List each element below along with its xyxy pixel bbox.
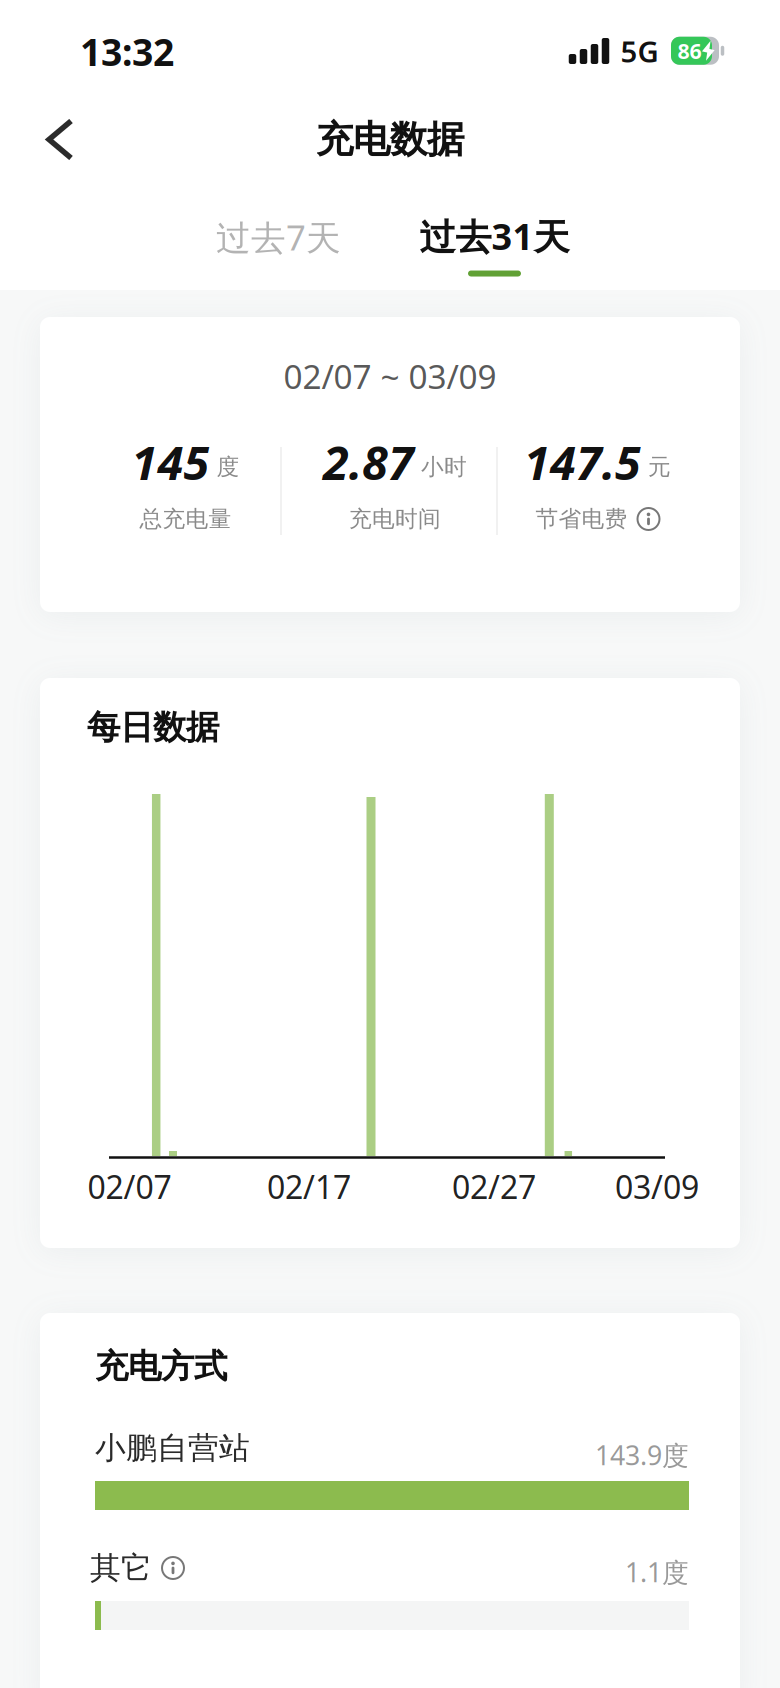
staticText: 充电时间 xyxy=(349,505,441,533)
button[interactable]: Info xyxy=(162,1557,184,1579)
staticText: 03/09 xyxy=(615,1165,699,1208)
staticText: 每日数据 xyxy=(87,707,219,748)
staticText: 02/27 xyxy=(452,1165,536,1208)
staticText: 1.1度 xyxy=(625,1554,689,1590)
staticText: 度 xyxy=(216,453,239,481)
button[interactable]: Back xyxy=(33,106,87,173)
staticText: 147.5 xyxy=(524,431,641,493)
staticText: 02/07 ~ 03/09 xyxy=(283,354,496,398)
staticText: 02/17 xyxy=(267,1165,351,1208)
button[interactable]: Info xyxy=(637,508,659,530)
staticText: 充电方式 xyxy=(95,1346,227,1387)
staticText: 小鹏自营站 xyxy=(95,1429,250,1467)
staticText: 节省电费 xyxy=(535,505,627,533)
staticText: 其它 xyxy=(90,1549,152,1587)
button[interactable]: 过去7天 xyxy=(208,206,349,268)
staticText: 5G xyxy=(620,31,658,70)
staticText: 86 xyxy=(677,37,701,65)
staticText: 02/07 xyxy=(87,1165,171,1208)
staticText: 元 xyxy=(648,453,671,481)
staticText: 过去31天 xyxy=(419,212,569,260)
button[interactable]: 过去31天 xyxy=(411,204,577,268)
staticText: 小时 xyxy=(421,453,467,481)
staticText: 143.9度 xyxy=(595,1437,689,1473)
staticText: 充电数据 xyxy=(316,117,464,162)
staticText: 145 xyxy=(131,431,209,493)
staticText: 13:32 xyxy=(80,27,174,76)
staticText: 2.87 xyxy=(323,431,414,493)
staticText: 总充电量 xyxy=(139,505,231,533)
staticText: 过去7天 xyxy=(216,214,341,260)
